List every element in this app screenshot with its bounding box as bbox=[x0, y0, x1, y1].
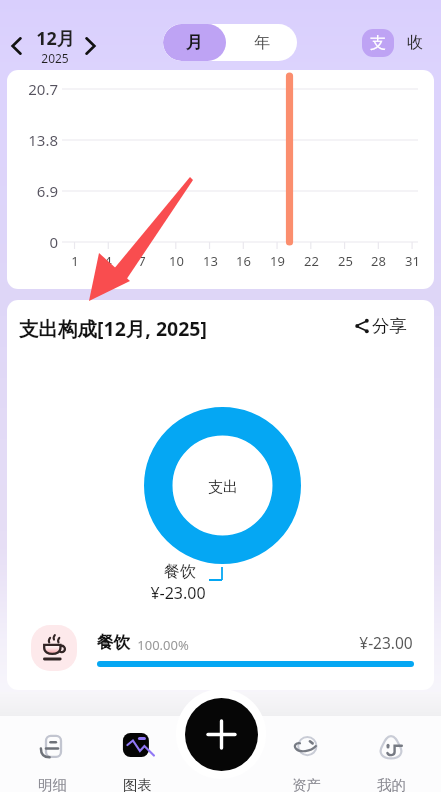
staticText: 1 bbox=[71, 252, 79, 270]
staticText: 16 bbox=[236, 252, 251, 270]
staticText: 28 bbox=[371, 252, 386, 270]
staticText: 10 bbox=[169, 252, 184, 270]
staticText: 支出 bbox=[208, 478, 238, 497]
staticText: 收 bbox=[407, 33, 423, 53]
button[interactable]: 明细 bbox=[12, 732, 92, 792]
staticText: 22 bbox=[304, 252, 319, 270]
button[interactable]: 支 bbox=[362, 29, 394, 57]
staticText: 我的 bbox=[377, 776, 406, 792]
staticText: 月 bbox=[186, 32, 203, 53]
button[interactable]: 月 bbox=[163, 24, 226, 61]
staticText: 年 bbox=[254, 33, 270, 53]
staticText: ¥-23.00 bbox=[359, 632, 413, 653]
button[interactable]: 资产 bbox=[266, 732, 346, 792]
staticText: 100.00% bbox=[137, 636, 189, 654]
staticText: 13 bbox=[203, 252, 218, 270]
button[interactable] bbox=[7, 618, 434, 678]
staticText: 7 bbox=[138, 252, 146, 270]
staticText: 13.8 bbox=[28, 130, 58, 150]
staticText: 支出构成[12月, 2025] bbox=[19, 315, 207, 342]
button[interactable]: Add transaction bbox=[185, 698, 258, 771]
button[interactable]: 我的 bbox=[351, 732, 431, 792]
staticText: 6.9 bbox=[36, 181, 58, 201]
button[interactable]: 分享 bbox=[354, 314, 407, 338]
staticText: 20.7 bbox=[28, 79, 58, 99]
staticText: 19 bbox=[270, 252, 285, 270]
staticText: 2025 bbox=[41, 50, 69, 66]
staticText: 4 bbox=[104, 252, 112, 270]
button[interactable]: Previous month bbox=[2, 31, 32, 61]
button[interactable]: 年 bbox=[226, 24, 297, 61]
staticText: 0 bbox=[49, 232, 58, 252]
staticText: 31 bbox=[405, 252, 420, 270]
button[interactable]: 收 bbox=[400, 29, 430, 57]
button[interactable]: Next month bbox=[75, 31, 105, 61]
button[interactable]: 图表 bbox=[97, 732, 177, 792]
staticText: 图表 bbox=[123, 776, 152, 792]
staticText: 12月 bbox=[36, 26, 75, 51]
staticText: 支 bbox=[370, 33, 386, 53]
staticText: ¥-23.00 bbox=[150, 582, 206, 604]
staticText: 餐饮 bbox=[164, 562, 196, 582]
staticText: 餐饮 bbox=[97, 632, 130, 653]
staticText: 明细 bbox=[38, 776, 67, 792]
staticText: 25 bbox=[338, 252, 353, 270]
staticText: 资产 bbox=[292, 776, 321, 792]
staticText: 分享 bbox=[372, 315, 407, 337]
